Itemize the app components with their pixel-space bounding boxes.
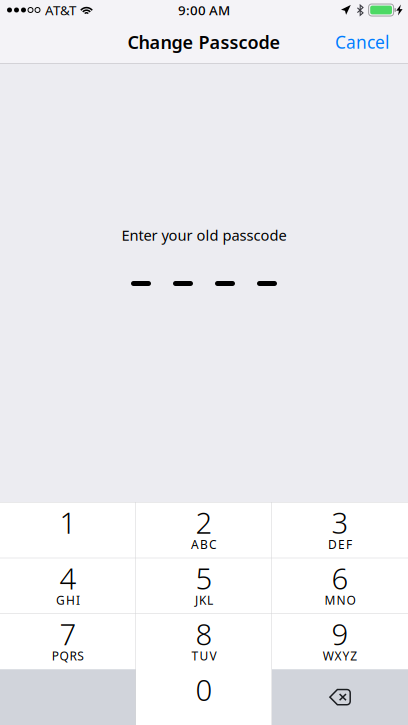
staticText: Cancel: [335, 30, 389, 53]
staticText: Enter your old passcode: [121, 225, 286, 245]
staticText: 6: [331, 559, 348, 598]
staticText: E: [338, 536, 345, 552]
staticText: 2: [195, 503, 212, 542]
staticText: 7: [59, 614, 76, 653]
button[interactable]: 0: [136, 669, 272, 725]
staticText: S: [77, 648, 84, 664]
button[interactable]: 9: [272, 613, 408, 669]
button[interactable]: 5: [136, 558, 272, 614]
staticText: C: [209, 536, 217, 552]
button[interactable]: 8: [136, 613, 272, 669]
staticText: H: [66, 592, 75, 608]
button[interactable]: 3: [272, 502, 408, 558]
staticText: 3: [331, 503, 348, 542]
button[interactable]: Cancel: [322, 20, 408, 64]
staticText: F: [346, 536, 352, 552]
button[interactable]: 6: [272, 558, 408, 614]
button[interactable]: Delete: [272, 669, 408, 725]
staticText: T: [192, 648, 199, 664]
staticText: G: [56, 592, 65, 608]
button[interactable]: 2: [136, 502, 272, 558]
staticText: P: [52, 648, 59, 664]
staticText: U: [199, 648, 208, 664]
staticText: Z: [350, 648, 357, 664]
staticText: M: [325, 592, 336, 608]
staticText: O: [346, 592, 355, 608]
button[interactable]: 4: [0, 558, 136, 614]
staticText: N: [336, 592, 345, 608]
staticText: 0: [195, 670, 212, 709]
button[interactable]: 1: [0, 502, 136, 558]
staticText: Change Passcode: [127, 30, 280, 54]
staticText: D: [328, 536, 337, 552]
staticText: X: [334, 648, 341, 664]
staticText: 1: [59, 503, 76, 542]
staticText: AT&T: [45, 1, 76, 19]
staticText: 4: [59, 559, 76, 598]
staticText: 5: [195, 559, 212, 598]
staticText: 8: [195, 614, 212, 653]
staticText: A: [191, 536, 199, 552]
button[interactable]: 7: [0, 613, 136, 669]
staticText: K: [199, 592, 206, 608]
staticText: V: [209, 648, 216, 664]
staticText: Q: [59, 648, 68, 664]
staticText: J: [195, 592, 198, 608]
staticText: L: [207, 592, 213, 608]
staticText: 9: [331, 614, 348, 653]
staticText: Y: [342, 648, 349, 664]
staticText: W: [323, 648, 334, 664]
staticText: B: [200, 536, 208, 552]
staticText: 9:00 AM: [178, 1, 230, 19]
staticText: R: [69, 648, 76, 664]
staticText: I: [76, 592, 80, 608]
